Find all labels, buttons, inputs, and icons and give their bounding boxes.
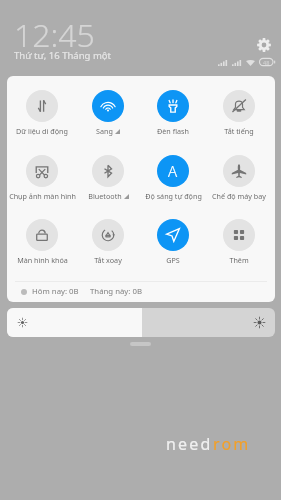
button[interactable]: A	[136, 150, 210, 201]
button[interactable]: GPS	[136, 214, 210, 265]
staticText: Tắt tiếng	[224, 126, 254, 136]
button[interactable]: Brightness	[7, 308, 275, 337]
button[interactable]: Dữ liệu di động	[5, 85, 79, 136]
staticText: Thêm	[229, 255, 249, 265]
staticText: Chế độ máy bay	[212, 191, 266, 201]
staticText: Tháng này: 0B	[90, 286, 142, 297]
staticText: GPS	[166, 255, 180, 265]
staticText: 12:45	[14, 13, 95, 57]
staticText: Chụp ảnh màn hình	[9, 191, 76, 201]
staticText: Sang	[96, 126, 113, 136]
staticText: Đèn flash	[157, 126, 189, 136]
button[interactable]: Đèn flash	[136, 85, 210, 136]
staticText: Độ sáng tự động	[145, 191, 202, 201]
staticText: Dữ liệu di động	[16, 126, 68, 136]
button[interactable]: Chế độ máy bay	[202, 150, 276, 201]
staticText: Thứ tư, 16 Tháng một	[14, 49, 111, 62]
staticText: rom	[213, 433, 251, 455]
button[interactable]: Bluetooth	[71, 150, 145, 201]
staticText: Bluetooth	[88, 191, 122, 201]
button[interactable]: Hôm nay: 0B	[21, 283, 142, 300]
button[interactable]: Tắt xoay	[71, 214, 145, 265]
button[interactable]: Sang	[71, 85, 145, 136]
button[interactable]: Chụp ảnh màn hình	[5, 150, 79, 201]
button[interactable]: Màn hình khóa	[5, 214, 79, 265]
staticText: need	[166, 433, 213, 455]
staticText: 48	[263, 59, 270, 66]
button[interactable]: Settings	[253, 34, 275, 56]
staticText: A	[168, 161, 178, 181]
button[interactable]: Thêm	[202, 214, 276, 265]
staticText: Hôm nay: 0B	[32, 286, 79, 297]
staticText: Màn hình khóa	[17, 255, 68, 265]
button[interactable]: Tắt tiếng	[202, 85, 276, 136]
staticText: Tắt xoay	[94, 255, 122, 265]
